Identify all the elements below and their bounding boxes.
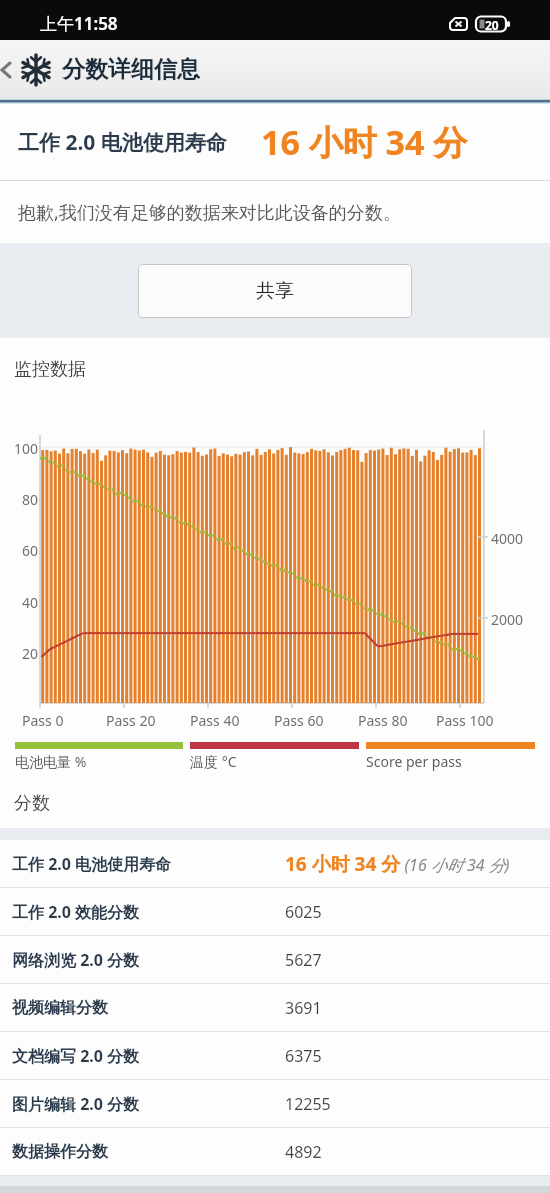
button[interactable]: 工作 2.0 电池使用寿命: [0, 840, 550, 887]
staticText: 分数详细信息: [62, 55, 200, 84]
staticText: 电池电量 %: [15, 752, 87, 771]
staticText: 数据操作分数: [12, 1142, 108, 1162]
staticText: 100: [14, 439, 39, 458]
staticText: 抱歉,我们没有足够的数据来对比此设备的分数。: [18, 200, 401, 225]
button[interactable]: 图片编辑 2.0 分数: [0, 1080, 550, 1127]
button[interactable]: 视频编辑分数: [0, 984, 550, 1031]
button[interactable]: 文档编写 2.0 分数: [0, 1032, 550, 1079]
staticText: 网络浏览 2.0 分数: [12, 949, 140, 971]
staticText: 工作 2.0 效能分数: [12, 901, 140, 923]
staticText: 共享: [256, 279, 294, 303]
staticText: 40: [22, 593, 39, 612]
staticText: Score per pass: [366, 752, 462, 771]
staticText: 视频编辑分数: [12, 998, 108, 1018]
staticText: 6375: [285, 1045, 322, 1067]
staticText: 6025: [285, 901, 322, 923]
staticText: 16 小时 34 分: [261, 119, 468, 165]
staticText: Pass 40: [190, 711, 240, 730]
staticText: 上午11:58: [40, 12, 118, 35]
button[interactable]: 工作 2.0 电池使用寿命: [0, 104, 550, 180]
staticText: 4892: [285, 1141, 322, 1163]
staticText: Pass 0: [22, 711, 64, 730]
staticText: 分数: [14, 792, 50, 815]
button[interactable]: 工作 2.0 效能分数: [0, 888, 550, 935]
staticText: 20: [22, 644, 39, 663]
button[interactable]: 共享: [138, 264, 412, 318]
staticText: 2000: [491, 610, 524, 629]
staticText: 80: [22, 490, 39, 509]
staticText: 5627: [285, 949, 322, 971]
staticText: Pass 100: [436, 711, 494, 730]
staticText: 60: [22, 541, 39, 560]
staticText: 12255: [285, 1093, 331, 1115]
staticText: 工作 2.0 电池使用寿命: [18, 128, 227, 157]
staticText: 16 小时 34 分 (16 小时 34 分): [285, 851, 510, 877]
staticText: 工作 2.0 电池使用寿命: [12, 853, 172, 875]
staticText: 20: [485, 17, 499, 33]
staticText: 4000: [491, 529, 524, 548]
staticText: Pass 80: [358, 711, 408, 730]
staticText: 温度 °C: [190, 752, 237, 771]
staticText: 文档编写 2.0 分数: [12, 1045, 140, 1067]
staticText: 图片编辑 2.0 分数: [12, 1093, 140, 1115]
staticText: Pass 20: [106, 711, 156, 730]
button[interactable]: 网络浏览 2.0 分数: [0, 936, 550, 983]
staticText: 3691: [285, 997, 322, 1019]
button[interactable]: 分数详细信息: [0, 40, 550, 99]
staticText: 监控数据: [14, 358, 86, 381]
staticText: Pass 60: [274, 711, 324, 730]
button[interactable]: 数据操作分数: [0, 1128, 550, 1175]
